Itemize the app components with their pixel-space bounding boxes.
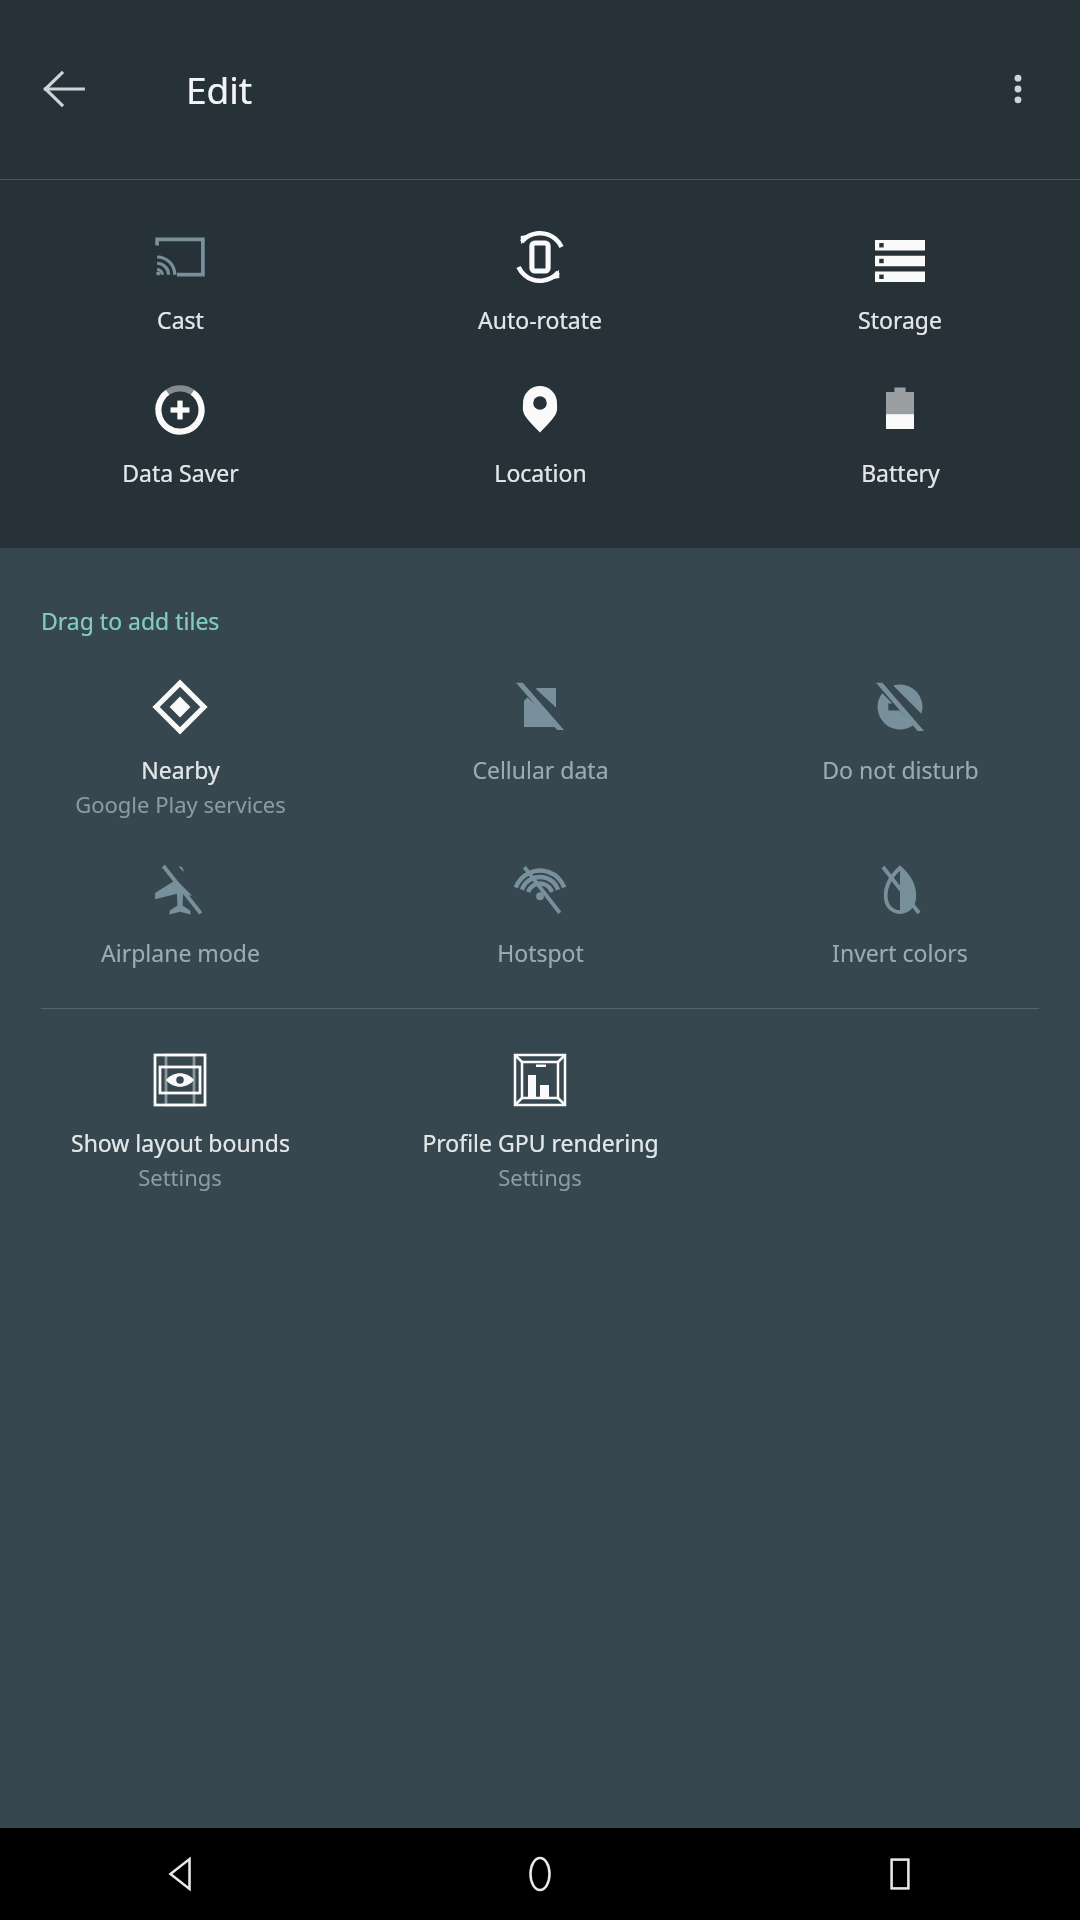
staticText: Do not disturb [822, 754, 979, 785]
button[interactable]: Back [0, 1828, 360, 1920]
button[interactable]: Home [360, 1828, 720, 1920]
staticText: Auto-rotate [478, 304, 602, 335]
button[interactable]: Airplane mode [0, 859, 360, 968]
button[interactable]: Cast [0, 226, 360, 335]
staticText: Location [494, 457, 587, 488]
staticText: Storage [858, 304, 942, 335]
staticText: Profile GPU rendering [422, 1127, 659, 1158]
button[interactable]: Data Saver [0, 379, 360, 488]
staticText: Hotspot [497, 937, 584, 968]
button[interactable]: Show layout bounds [0, 1049, 360, 1192]
button[interactable]: Nearby [0, 676, 360, 819]
staticText: Cast [157, 304, 204, 335]
button[interactable]: Cellular data [360, 676, 720, 785]
button[interactable]: Battery [720, 379, 1080, 488]
button[interactable]: Recents [720, 1828, 1080, 1920]
staticText: Cellular data [472, 754, 609, 785]
staticText: Invert colors [832, 937, 968, 968]
button[interactable]: Location [360, 379, 720, 488]
button[interactable]: Back [28, 53, 100, 125]
button[interactable]: Hotspot [360, 859, 720, 968]
button[interactable]: Invert colors [720, 859, 1080, 968]
button[interactable]: Auto-rotate [360, 226, 720, 335]
staticText: Settings [498, 1162, 582, 1192]
staticText: Google Play services [75, 789, 286, 819]
button[interactable]: Do not disturb [720, 676, 1080, 785]
button[interactable]: More options [982, 53, 1054, 125]
button[interactable]: Profile GPU rendering [360, 1049, 720, 1192]
staticText: Show layout bounds [71, 1127, 290, 1158]
staticText: Airplane mode [101, 937, 260, 968]
staticText: Data Saver [122, 457, 239, 488]
staticText: Edit [186, 64, 253, 114]
staticText: Settings [138, 1162, 222, 1192]
staticText: Drag to add tiles [41, 605, 220, 636]
staticText: Nearby [141, 754, 220, 785]
staticText: Battery [861, 457, 940, 488]
button[interactable]: Storage [720, 226, 1080, 335]
